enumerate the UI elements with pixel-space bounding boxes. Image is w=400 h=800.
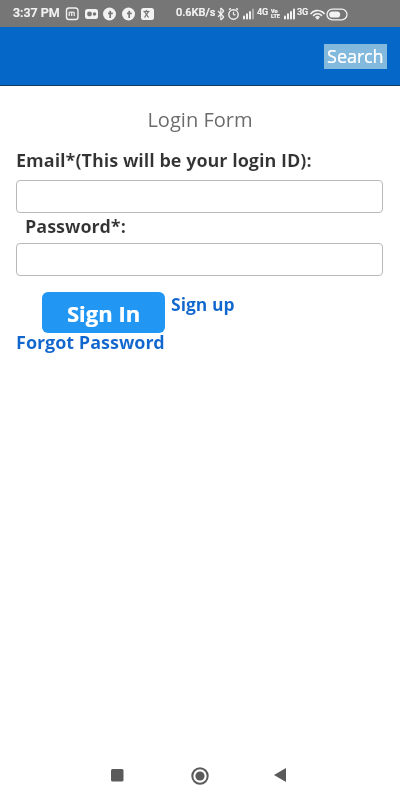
staticText: Email*(This will be your login ID): bbox=[16, 148, 312, 173]
staticText: 4G bbox=[257, 7, 269, 18]
button[interactable]: Sign up bbox=[171, 292, 235, 316]
staticText: Sign In bbox=[67, 298, 141, 328]
staticText: Login Form bbox=[0, 106, 400, 133]
button[interactable]: Search bbox=[324, 44, 387, 69]
button[interactable] bbox=[16, 180, 383, 213]
staticText: Search bbox=[327, 44, 384, 69]
staticText: Password*: bbox=[25, 214, 126, 239]
staticText: 3:37 PM bbox=[13, 5, 60, 20]
button[interactable] bbox=[188, 764, 212, 788]
staticText: LTE bbox=[271, 13, 280, 19]
button[interactable]: Sign In bbox=[42, 292, 165, 333]
staticText: 0.6KB/s bbox=[176, 6, 216, 19]
button[interactable] bbox=[16, 243, 383, 276]
button[interactable] bbox=[268, 763, 292, 787]
button[interactable] bbox=[105, 763, 129, 787]
staticText: Vo bbox=[271, 8, 278, 14]
staticText: 3G bbox=[297, 7, 309, 18]
button[interactable]: Forgot Password bbox=[16, 330, 165, 355]
